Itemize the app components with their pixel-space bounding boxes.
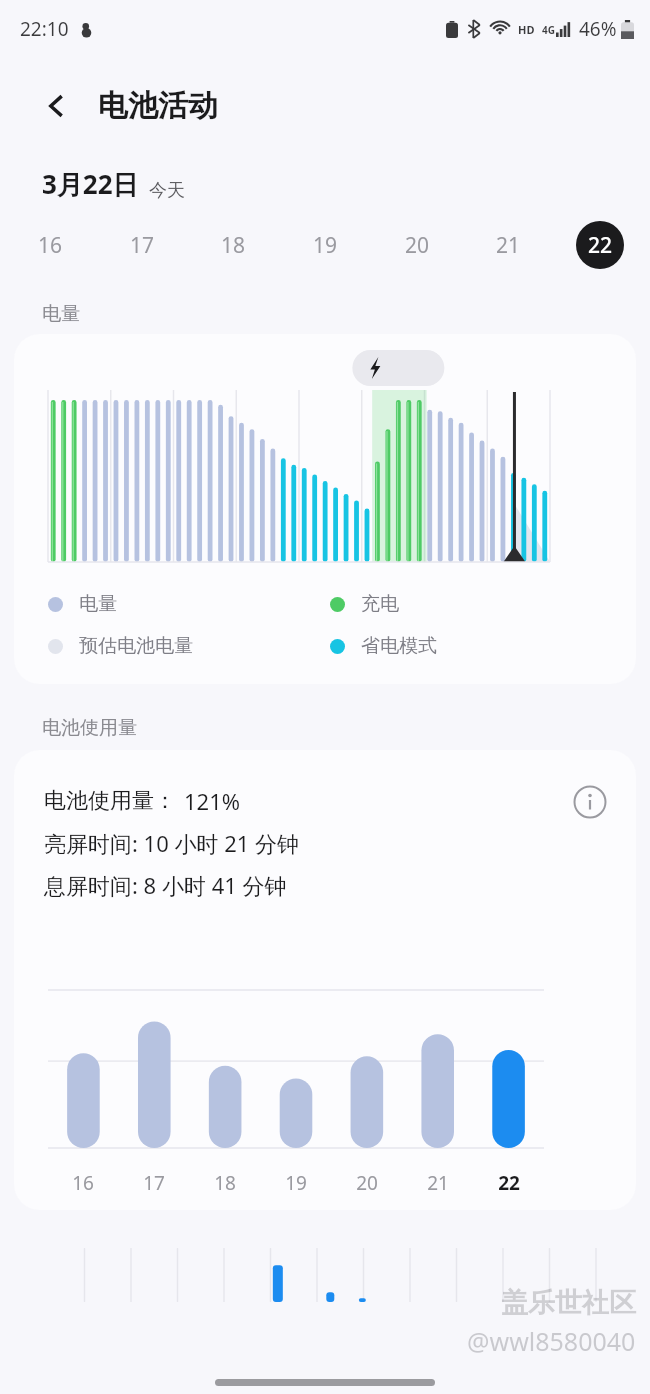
button[interactable]: 19 bbox=[301, 221, 349, 269]
staticText: 电池活动 bbox=[98, 87, 218, 125]
staticText: 20 bbox=[356, 1170, 378, 1196]
staticText: 46% bbox=[579, 16, 617, 42]
staticText: 21 bbox=[496, 231, 521, 260]
button[interactable]: 17 bbox=[118, 221, 166, 269]
staticText: 16 bbox=[38, 231, 63, 260]
staticText: 22:10 bbox=[20, 16, 69, 42]
staticText: 22 bbox=[498, 1170, 520, 1196]
staticText: 18 bbox=[214, 1170, 236, 1196]
staticText: 电量 bbox=[79, 592, 117, 616]
staticText: 121% bbox=[184, 786, 241, 816]
button[interactable]: 22 bbox=[576, 221, 624, 269]
staticText: 息屏时间: 8 小时 41 分钟 bbox=[44, 870, 287, 900]
staticText: 22 bbox=[588, 231, 613, 260]
staticText: 亮屏时间: 10 小时 21 分钟 bbox=[44, 828, 300, 858]
button[interactable]: 21 bbox=[484, 221, 532, 269]
staticText: 预估电池电量 bbox=[79, 634, 193, 658]
staticText: 电池使用量： bbox=[44, 787, 176, 815]
staticText: 17 bbox=[143, 1170, 165, 1196]
staticText: HD bbox=[518, 22, 535, 37]
staticText: @wwl8580040 bbox=[467, 1324, 636, 1358]
staticText: 19 bbox=[313, 231, 338, 260]
button[interactable]: 信息 bbox=[566, 778, 614, 826]
staticText: 省电模式 bbox=[361, 634, 437, 658]
button[interactable]: 16 bbox=[26, 221, 74, 269]
button[interactable]: 返回 bbox=[34, 83, 80, 129]
staticText: 今天 bbox=[149, 179, 185, 202]
staticText: 充电 bbox=[361, 592, 399, 616]
staticText: 20 bbox=[405, 231, 430, 260]
staticText: 18 bbox=[221, 231, 246, 260]
staticText: 4G bbox=[542, 23, 555, 37]
staticText: 3月22日 bbox=[42, 166, 139, 202]
staticText: 电量 bbox=[42, 302, 80, 326]
button[interactable]: 18 bbox=[209, 221, 257, 269]
button[interactable]: 20 bbox=[393, 221, 441, 269]
staticText: 19 bbox=[285, 1170, 307, 1196]
staticText: 盖乐世社区 bbox=[501, 1286, 636, 1320]
staticText: 17 bbox=[130, 231, 155, 260]
staticText: 21 bbox=[427, 1170, 449, 1196]
staticText: 电池使用量 bbox=[42, 716, 137, 740]
staticText: 16 bbox=[72, 1170, 94, 1196]
